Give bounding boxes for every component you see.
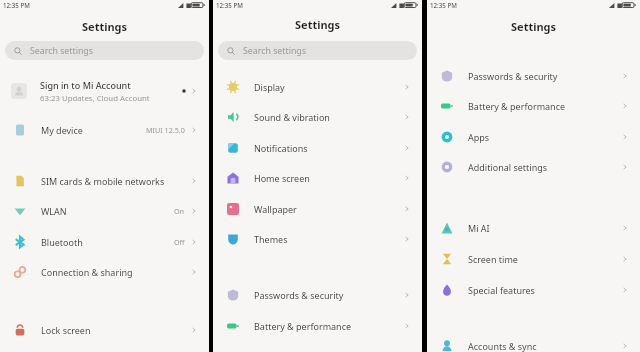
staticText: Wallpaper	[254, 203, 297, 215]
staticText: Settings	[82, 19, 128, 34]
staticText: Notifications	[254, 142, 308, 154]
staticText: Battery & performance	[468, 100, 566, 112]
staticText: Settings	[511, 19, 557, 34]
staticText: Passwords & security	[254, 289, 344, 301]
button[interactable]: Sign in to Mi Account	[0, 74, 209, 108]
staticText: My device	[41, 124, 83, 136]
staticText: Additional settings	[468, 161, 548, 173]
staticText: WLAN	[41, 205, 67, 217]
staticText: 12:35 PM	[216, 1, 243, 9]
staticText: Mi AI	[468, 222, 490, 234]
staticText: Battery & performance	[254, 320, 352, 332]
button[interactable]: Battery & performance	[427, 90, 640, 121]
button[interactable]: Sound & vibration	[213, 101, 422, 132]
staticText: Lock screen	[41, 324, 91, 336]
button[interactable]: Notifications	[213, 132, 422, 163]
staticText: Screen time	[468, 253, 518, 265]
button[interactable]: Battery & performance	[213, 310, 422, 341]
button[interactable]: Lock screen	[0, 314, 209, 345]
button[interactable]: Wallpaper	[213, 193, 422, 224]
staticText: SIM cards & mobile networks	[41, 175, 165, 187]
button[interactable]: Home screen	[213, 162, 422, 193]
staticText: Search settings	[30, 45, 93, 57]
staticText: Special features	[468, 284, 535, 296]
button[interactable]: Connection & sharing	[0, 256, 209, 287]
button[interactable]: Bluetooth	[0, 226, 209, 257]
button[interactable]: SIM cards & mobile networks	[0, 165, 209, 196]
button[interactable]: Additional settings	[427, 151, 640, 182]
staticText: 12:35 PM	[430, 1, 457, 9]
staticText: Home screen	[254, 172, 310, 184]
button[interactable]: Special features	[427, 274, 640, 305]
staticText: Bluetooth	[41, 236, 83, 248]
button[interactable]: Apps	[427, 121, 640, 152]
staticText: Themes	[254, 233, 288, 245]
staticText: Sign in to Mi Account	[40, 79, 131, 91]
button[interactable]: Search settings	[218, 41, 417, 60]
button[interactable]: Passwords & security	[213, 279, 422, 310]
staticText: Display	[254, 81, 285, 93]
staticText: MIUI 12.5.0	[146, 125, 185, 135]
staticText: Passwords & security	[468, 70, 558, 82]
staticText: Off	[174, 237, 185, 247]
button[interactable]: Accounts & sync	[427, 330, 640, 352]
staticText: Apps	[468, 131, 490, 143]
button[interactable]: Screen time	[427, 243, 640, 274]
staticText: 63:23 Updates, Cloud Account	[40, 93, 150, 104]
button[interactable]: My device	[0, 114, 209, 145]
button[interactable]: WLAN	[0, 195, 209, 226]
button[interactable]: Search settings	[5, 41, 204, 60]
button[interactable]: Mi AI	[427, 212, 640, 243]
staticText: On	[174, 206, 185, 216]
staticText: Search settings	[243, 45, 306, 57]
staticText: 12:35 PM	[3, 1, 30, 9]
staticText: Settings	[295, 17, 341, 32]
button[interactable]: Passwords & security	[427, 60, 640, 91]
button[interactable]: Display	[213, 71, 422, 102]
button[interactable]: Themes	[213, 223, 422, 254]
staticText: Sound & vibration	[254, 111, 330, 123]
staticText: Connection & sharing	[41, 266, 133, 278]
staticText: Accounts & sync	[468, 340, 537, 352]
